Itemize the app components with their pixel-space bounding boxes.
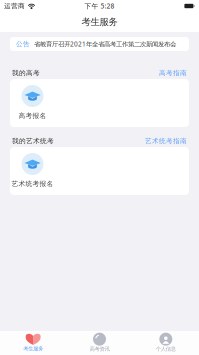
button[interactable]: 高考指南 xyxy=(159,69,187,77)
button[interactable]: 考生服务 xyxy=(0,331,66,355)
button[interactable]: 高考资讯 xyxy=(66,331,133,355)
staticText: 艺术统考报名 xyxy=(11,180,53,188)
staticText: 高考资讯 xyxy=(89,346,109,352)
staticText: 公告 xyxy=(16,40,30,48)
button[interactable]: 艺术统考报名 xyxy=(10,147,55,195)
button[interactable]: 个人信息 xyxy=(133,331,199,355)
button[interactable]: 高考报名 xyxy=(10,79,55,127)
staticText: 我的高考 xyxy=(12,69,40,77)
staticText: 个人信息 xyxy=(156,346,176,352)
button[interactable]: 艺术统考指南 xyxy=(145,137,187,145)
button[interactable]: 公告 xyxy=(10,37,189,51)
staticText: 省教育厅召开2021年全省高考工作第二次新闻发布会 xyxy=(34,40,176,48)
staticText: 艺术统考指南 xyxy=(145,137,187,145)
staticText: 考生服务 xyxy=(23,345,43,352)
staticText: 我的艺术统考 xyxy=(12,137,54,145)
staticText: 运营商 xyxy=(4,2,25,10)
staticText: 考生服务 xyxy=(81,16,117,28)
staticText: 高考报名 xyxy=(18,112,46,120)
staticText: 高考指南 xyxy=(159,69,187,77)
staticText: 下午 5:28 xyxy=(84,1,114,11)
